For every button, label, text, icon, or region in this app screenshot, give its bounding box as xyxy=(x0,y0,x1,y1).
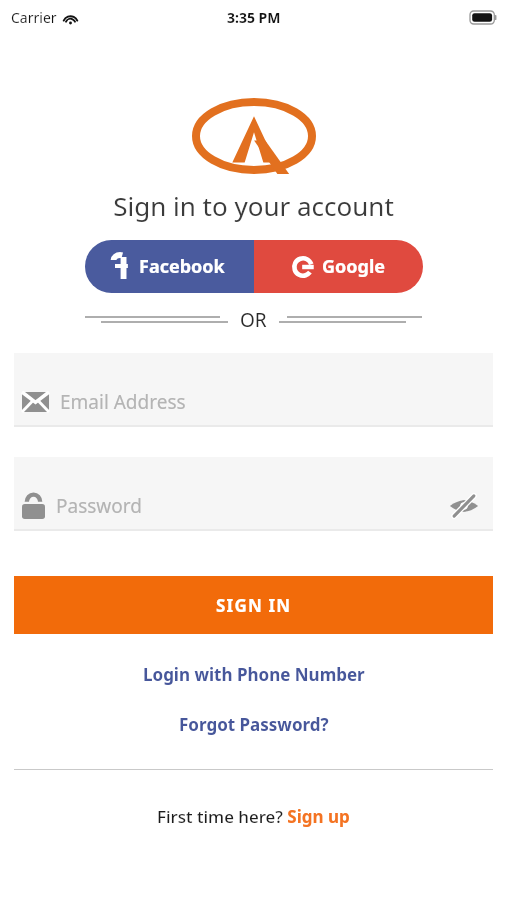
staticText: SIGN IN xyxy=(216,594,292,617)
button[interactable]: Email Address xyxy=(14,353,493,427)
staticText: Carrier xyxy=(11,8,57,27)
staticText: Email Address xyxy=(60,389,479,415)
button[interactable]: SIGN IN xyxy=(14,576,493,634)
button[interactable]: Show password xyxy=(449,494,479,518)
button[interactable]: Google xyxy=(254,240,423,293)
staticText: Sign in to your account xyxy=(113,188,394,223)
staticText: First time here? Sign up xyxy=(157,805,350,828)
button[interactable]: Password xyxy=(14,457,493,531)
staticText: OR xyxy=(240,307,267,333)
button[interactable]: Facebook xyxy=(85,240,254,293)
staticText: Password xyxy=(56,493,449,519)
staticText: Login with Phone Number xyxy=(143,663,365,686)
staticText: 3:35 PM xyxy=(227,8,281,27)
button[interactable]: Login with Phone Number xyxy=(133,659,375,690)
staticText: Facebook xyxy=(139,254,225,279)
button[interactable]: Forgot Password? xyxy=(169,709,339,740)
staticText: Forgot Password? xyxy=(179,713,329,736)
staticText: Google xyxy=(322,254,386,279)
button[interactable]: First time here? Sign up xyxy=(147,801,360,832)
